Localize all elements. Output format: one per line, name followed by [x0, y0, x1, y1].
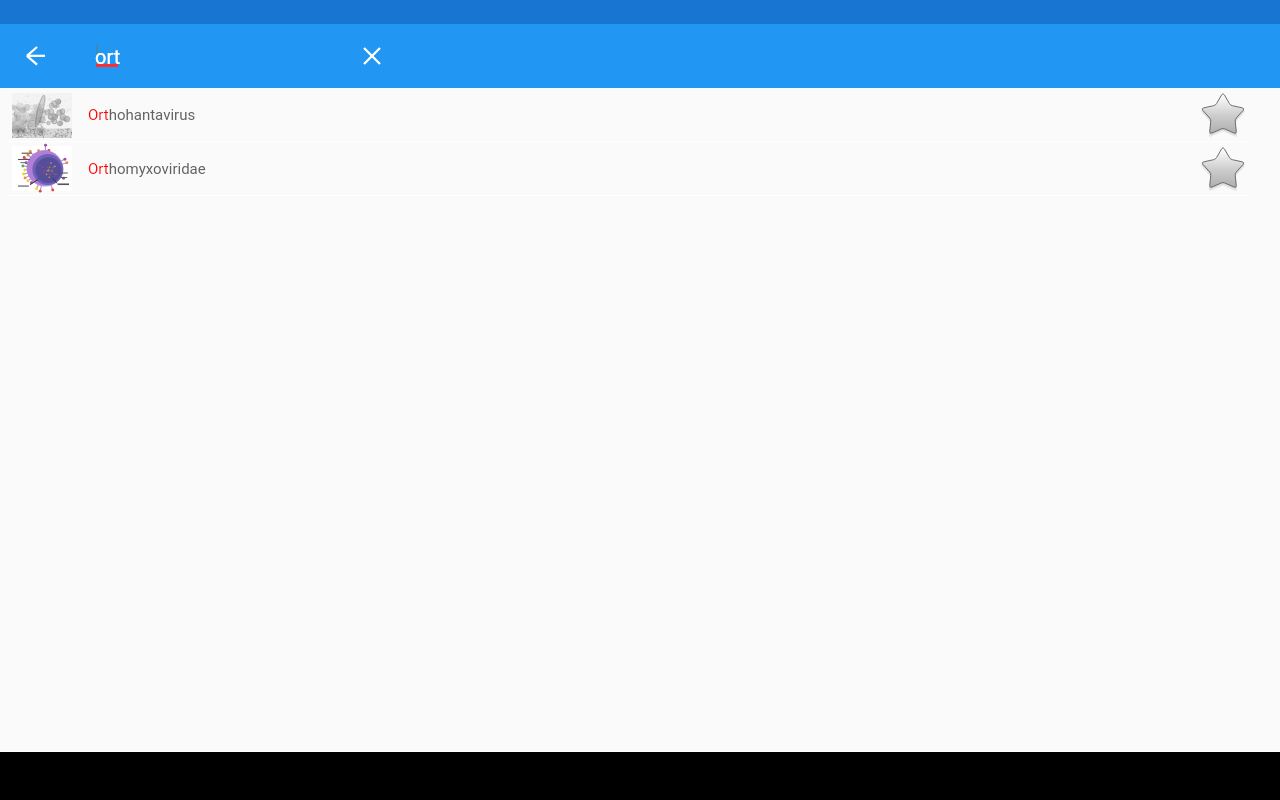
- button[interactable]: Orthomyxoviridae: [0, 142, 1280, 195]
- button[interactable]: Orthohantavirus: [0, 89, 1280, 141]
- button[interactable]: Back: [12, 32, 60, 80]
- button[interactable]: Add to favourites: [1196, 142, 1249, 195]
- button[interactable]: ort: [96, 32, 336, 80]
- button[interactable]: Add to favourites: [1196, 89, 1249, 141]
- staticText: Orthomyxoviridae: [88, 160, 206, 178]
- staticText: ort: [95, 45, 121, 68]
- button[interactable]: Clear search: [348, 32, 396, 80]
- staticText: Orthohantavirus: [88, 106, 196, 124]
